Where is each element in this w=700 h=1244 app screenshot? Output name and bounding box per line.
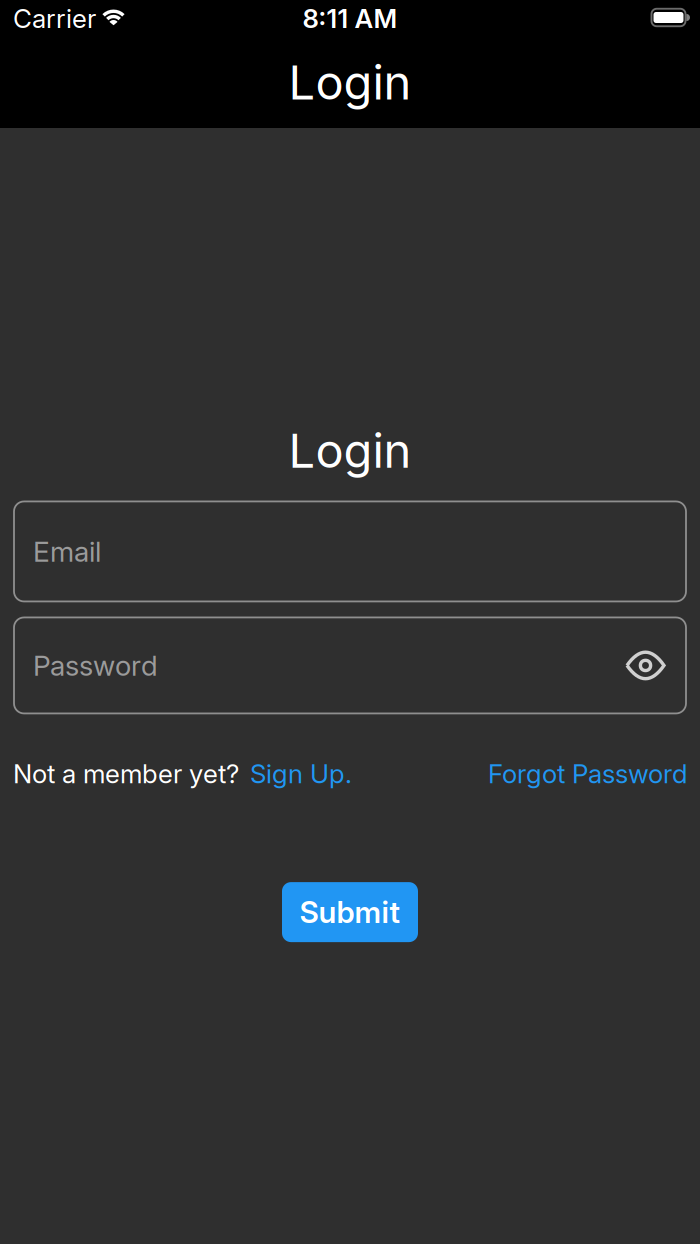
staticText: Sign Up. <box>250 758 352 789</box>
staticText: 8:11 AM <box>302 3 397 34</box>
button[interactable]: Sign Up. <box>239 758 352 789</box>
staticText: Login <box>288 423 411 478</box>
staticText: Not a member yet? <box>13 758 239 789</box>
staticText: Carrier <box>13 3 96 34</box>
staticText: Password <box>33 649 158 682</box>
staticText: Email <box>33 535 101 568</box>
staticText: Submit <box>299 894 400 930</box>
button[interactable]: Submit <box>282 882 418 942</box>
button[interactable]: Forgot Password <box>488 758 688 789</box>
staticText: Login <box>288 55 411 110</box>
button[interactable]: Show password <box>627 652 664 679</box>
staticText: Forgot Password <box>488 758 688 789</box>
